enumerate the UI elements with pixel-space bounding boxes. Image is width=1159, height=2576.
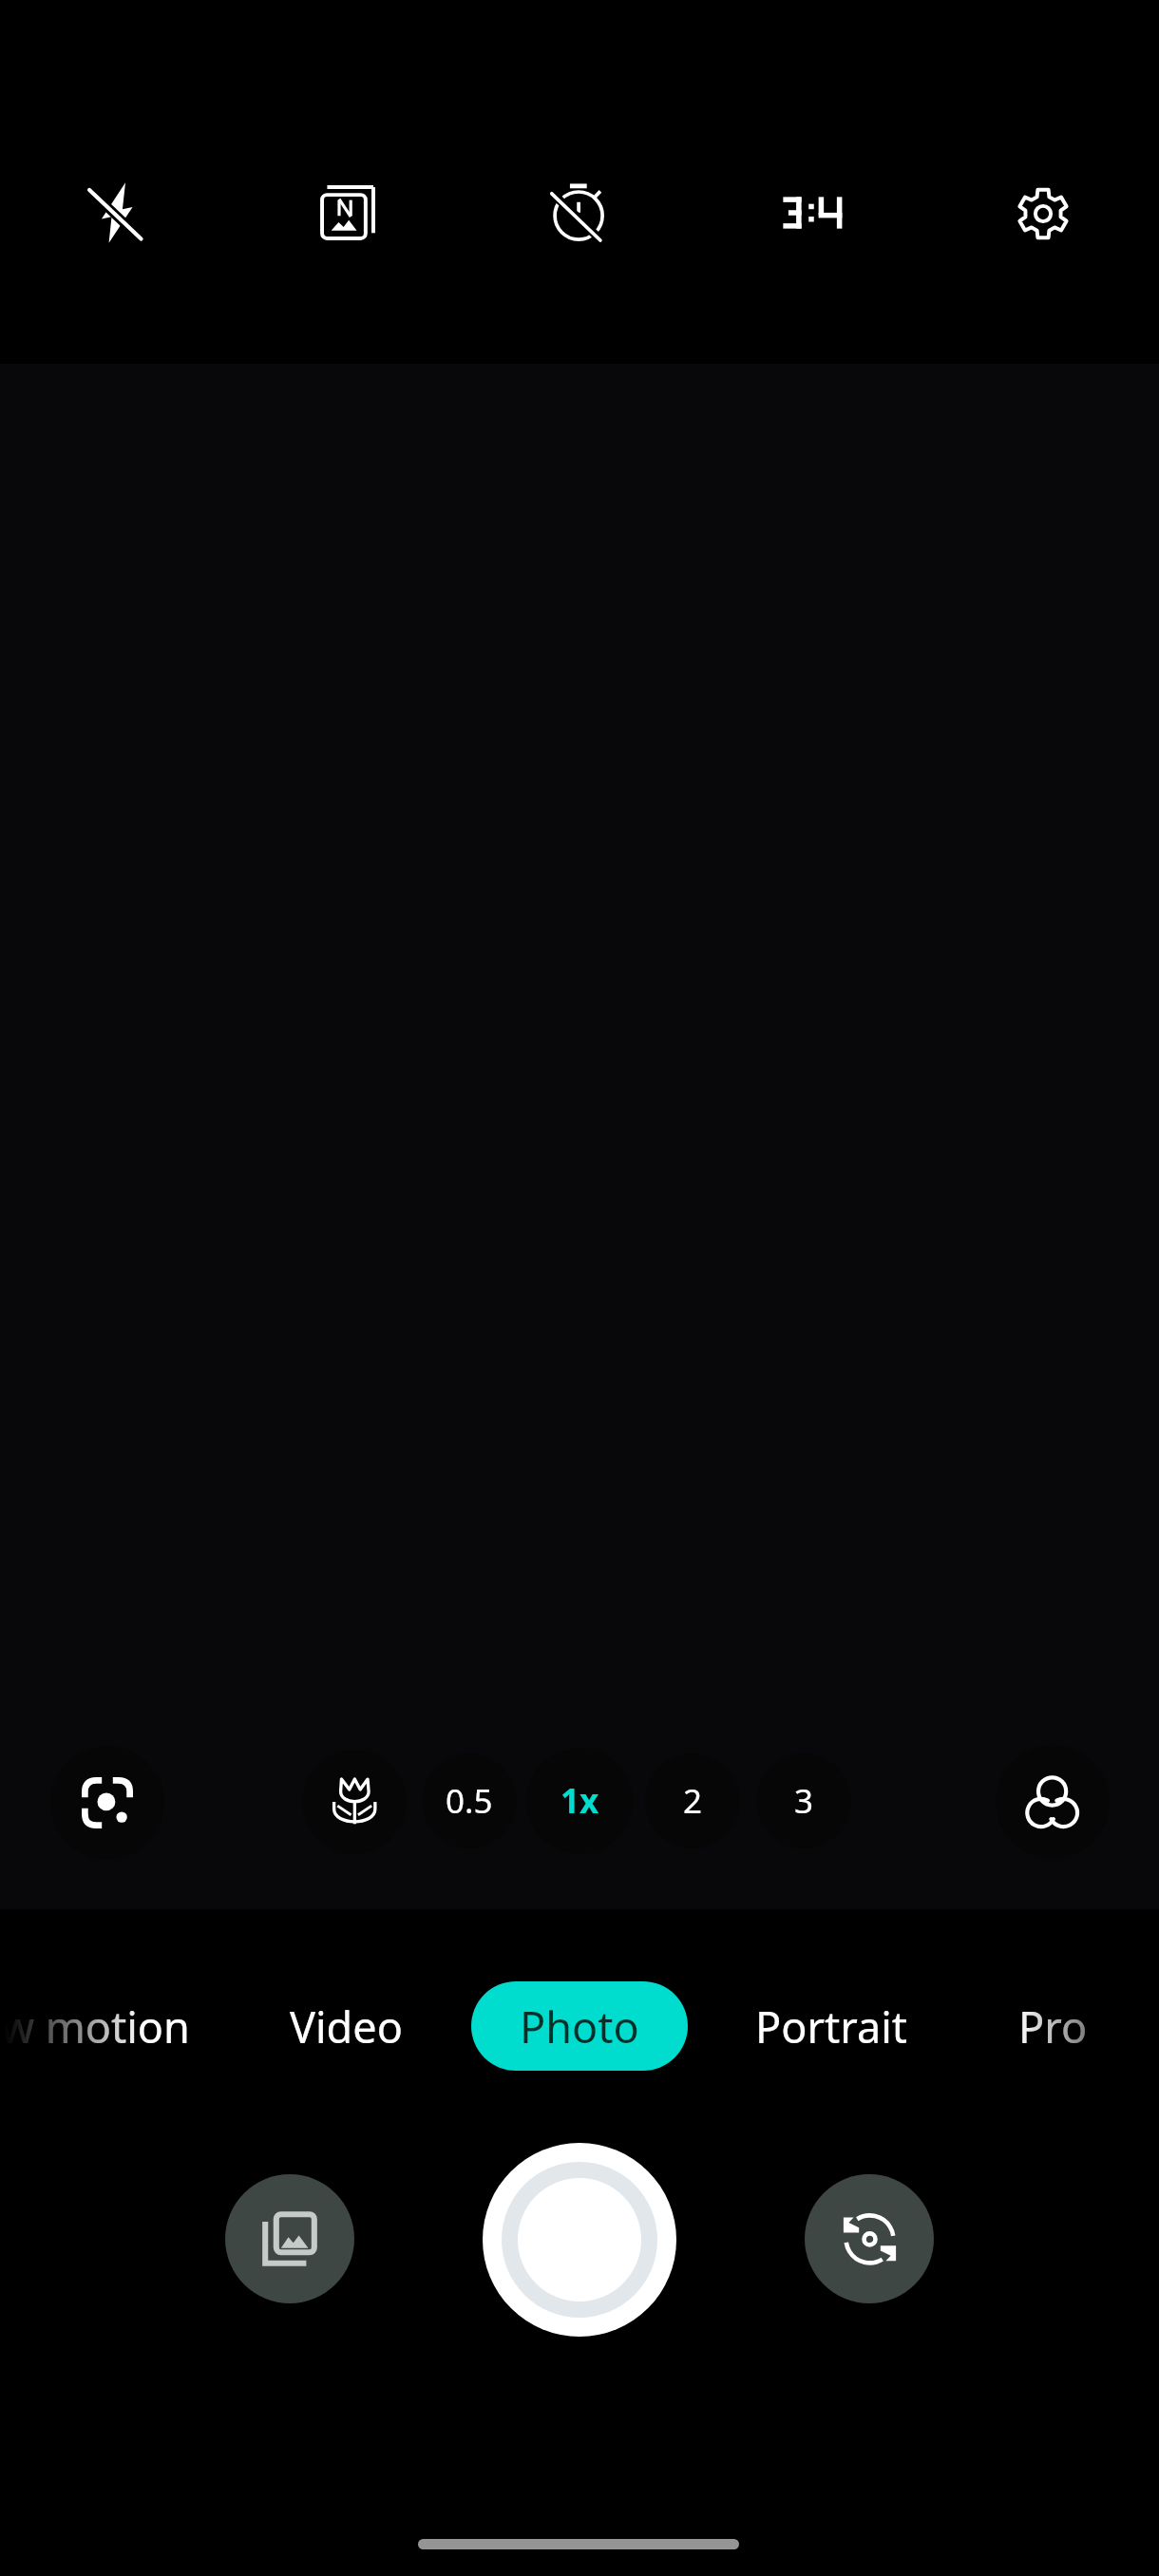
button[interactable]: 2 — [645, 1753, 740, 1848]
button[interactable]: Slow motion — [0, 1981, 246, 2071]
staticText: Photo — [520, 1998, 639, 2055]
button[interactable]: Portrait — [708, 1981, 955, 2071]
staticText: 1x — [560, 1778, 599, 1824]
staticText: 3 — [794, 1778, 814, 1824]
button[interactable]: Flash off — [63, 161, 167, 265]
staticText: 0.5 — [446, 1778, 493, 1824]
staticText: 2 — [683, 1778, 703, 1824]
staticText: Pro — [1018, 1998, 1088, 2055]
button[interactable]: Pro — [958, 1981, 1148, 2071]
staticText: Video — [290, 1998, 403, 2055]
button[interactable]: Aspect ratio 3:4 — [762, 163, 861, 262]
staticText: Portrait — [755, 1998, 908, 2055]
button[interactable]: Photo — [471, 1981, 688, 2071]
button[interactable]: Macro — [302, 1750, 407, 1854]
button[interactable]: Google Lens — [50, 1746, 164, 1860]
button[interactable]: Video — [232, 1981, 460, 2071]
staticText: Slow motion — [0, 1998, 190, 2055]
button[interactable]: Take photo — [475, 2135, 684, 2344]
button[interactable]: 1x — [526, 1748, 633, 1854]
button[interactable]: 3 — [756, 1753, 851, 1848]
button[interactable]: Switch camera — [805, 2174, 934, 2303]
button[interactable]: Settings — [991, 161, 1095, 266]
button[interactable]: Photo mode — [295, 161, 400, 265]
button[interactable]: Filters — [996, 1745, 1110, 1859]
button[interactable]: 0.5 — [422, 1753, 517, 1848]
button[interactable]: Gallery — [225, 2174, 354, 2303]
button[interactable]: Timer off — [527, 160, 632, 264]
